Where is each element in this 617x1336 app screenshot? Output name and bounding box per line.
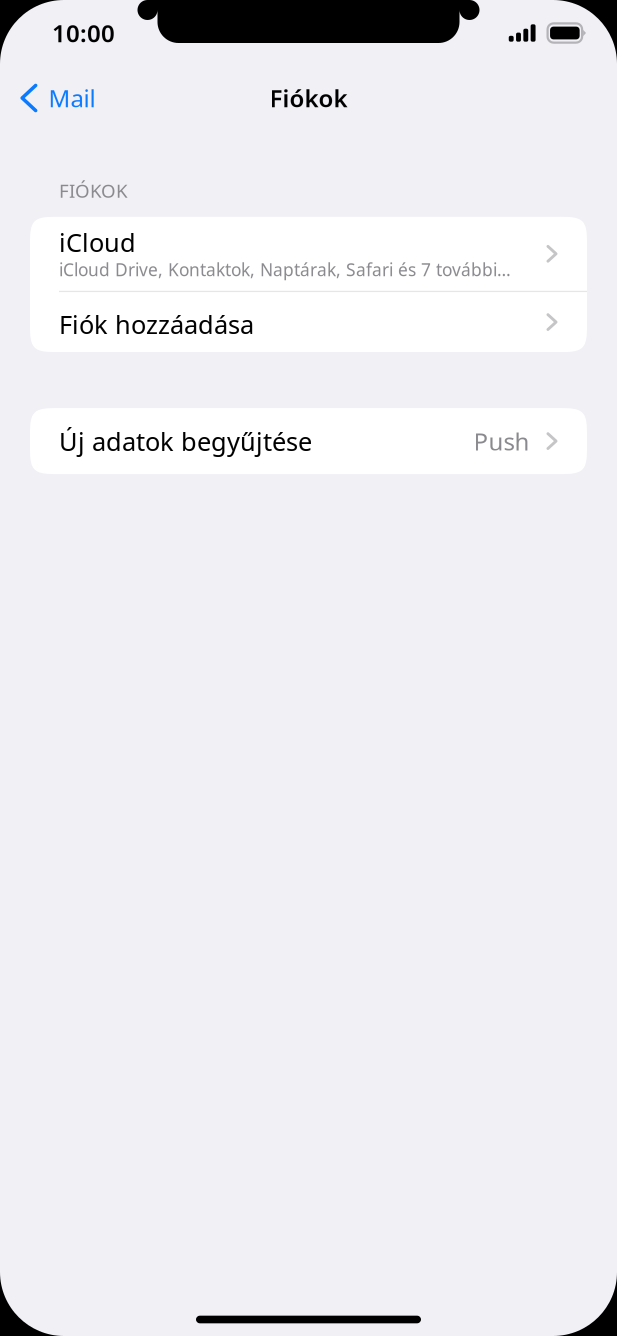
staticText: Fiókok <box>269 82 347 114</box>
staticText: Új adatok begyűjtése <box>59 424 312 458</box>
staticText: iCloud Drive, Kontaktok, Naptárak, Safar… <box>59 258 511 281</box>
staticText: Mail <box>48 82 95 114</box>
button[interactable]: Back to Mail <box>0 74 109 122</box>
staticText: 10:00 <box>52 17 115 49</box>
staticText: FIÓKOK <box>59 178 128 203</box>
button[interactable]: Új adatok begyűjtése <box>30 408 587 474</box>
staticText: Push <box>473 425 529 457</box>
button[interactable]: iCloud <box>30 217 587 291</box>
staticText: Fiók hozzáadása <box>59 307 254 341</box>
button[interactable]: Fiók hozzáadása <box>30 292 587 352</box>
staticText: iCloud <box>59 225 136 259</box>
